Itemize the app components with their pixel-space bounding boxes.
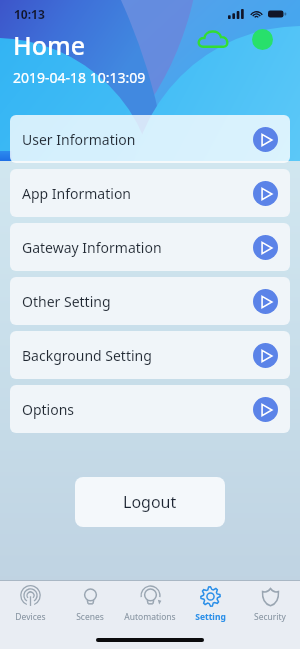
staticText: App Information <box>22 184 132 203</box>
staticText: 10:13 <box>14 6 45 22</box>
staticText: Gateway Information <box>22 238 162 257</box>
staticText: Devices <box>15 611 46 623</box>
staticText: Scenes <box>76 611 104 623</box>
staticText: Background Setting <box>22 346 152 365</box>
button[interactable]: Options <box>10 385 290 433</box>
button[interactable]: Security <box>240 585 300 623</box>
button[interactable]: Other Setting <box>10 277 290 325</box>
button[interactable]: User Information <box>10 115 290 163</box>
button[interactable]: Gateway Information <box>10 223 290 271</box>
staticText: 2019-04-18 10:13:09 <box>13 68 146 87</box>
button[interactable]: Cloud status <box>198 28 230 52</box>
button[interactable]: Online <box>252 29 273 50</box>
staticText: Logout <box>123 491 177 513</box>
button[interactable]: Logout <box>75 477 225 527</box>
staticText: Setting <box>195 611 226 623</box>
staticText: Home <box>13 28 86 62</box>
staticText: Options <box>22 400 75 419</box>
button[interactable]: Setting <box>180 585 240 623</box>
button[interactable]: Scenes <box>60 585 120 623</box>
button[interactable]: Automations <box>120 585 180 623</box>
staticText: Security <box>254 611 286 623</box>
button[interactable]: Devices <box>0 585 60 623</box>
button[interactable]: Background Setting <box>10 331 290 379</box>
staticText: Automations <box>124 611 176 623</box>
staticText: Other Setting <box>22 292 111 311</box>
button[interactable]: App Information <box>10 169 290 217</box>
staticText: User Information <box>22 130 136 149</box>
